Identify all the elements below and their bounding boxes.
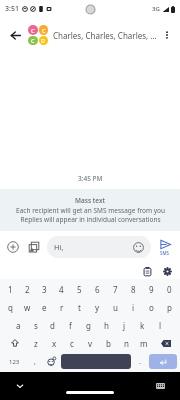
button[interactable]: 5 (70, 282, 88, 296)
staticText: d (50, 320, 55, 331)
button[interactable]: o (142, 300, 160, 314)
button[interactable]: Switch keyboard (152, 378, 168, 394)
button[interactable]: 3 (36, 282, 53, 296)
button[interactable]: a (10, 318, 27, 332)
button[interactable]: 6 (88, 282, 106, 296)
staticText: z (34, 338, 38, 349)
button[interactable]: 7 (106, 282, 124, 296)
button[interactable]: Add attachment (4, 238, 22, 256)
staticText: , (34, 357, 36, 367)
staticText: C (42, 27, 46, 34)
button[interactable]: r (53, 300, 70, 314)
staticText: 6 (95, 284, 100, 295)
staticText: 2 (25, 284, 30, 295)
button[interactable]: b (99, 336, 117, 350)
button[interactable]: Period (132, 354, 148, 369)
button[interactable]: g (79, 318, 97, 332)
button[interactable]: More options (157, 25, 177, 45)
button[interactable]: Back (4, 24, 26, 46)
staticText: y (95, 302, 100, 313)
button[interactable]: w (19, 300, 36, 314)
button[interactable]: 1 (2, 282, 19, 296)
staticText: w (24, 302, 31, 313)
button[interactable]: Send SMS (154, 238, 176, 257)
staticText: a (16, 320, 21, 331)
button[interactable]: 2 (19, 282, 36, 296)
button[interactable]: Enter (149, 354, 177, 369)
button[interactable]: 8 (124, 282, 142, 296)
button[interactable]: t (70, 300, 88, 314)
staticText: f (69, 320, 72, 331)
button[interactable]: Hi, (47, 236, 151, 258)
button[interactable]: c (63, 336, 81, 350)
staticText: . (139, 357, 141, 367)
staticText: q (8, 302, 13, 313)
button[interactable]: q (2, 300, 19, 314)
staticText: h (104, 320, 109, 331)
staticText: Each recipient will get an SMS message f… (16, 206, 165, 215)
staticText: o (149, 302, 154, 313)
button[interactable]: Gallery (25, 238, 43, 256)
button[interactable]: z (27, 336, 45, 350)
button[interactable]: 123 (2, 354, 27, 369)
button[interactable]: m (135, 336, 153, 350)
staticText: b (106, 338, 111, 349)
button[interactable]: p (160, 300, 178, 314)
staticText: v (88, 338, 93, 349)
staticText: u (113, 302, 118, 313)
staticText: g (86, 320, 91, 331)
button[interactable]: y (88, 300, 106, 314)
staticText: Replies will appear in individual conver… (20, 215, 161, 224)
button[interactable]: l (151, 318, 169, 332)
button[interactable]: h (97, 318, 115, 332)
staticText: e (42, 302, 47, 313)
button[interactable]: v (81, 336, 99, 350)
staticText: p (167, 302, 172, 313)
staticText: 123 (9, 358, 20, 366)
button[interactable]: 0 (160, 282, 178, 296)
button[interactable]: Backspace (153, 336, 178, 350)
button[interactable]: s (27, 318, 44, 332)
staticText: x (52, 338, 57, 349)
staticText: l (159, 320, 162, 331)
button[interactable]: 4 (53, 282, 70, 296)
staticText: Hi, (54, 242, 133, 252)
staticText: n (124, 338, 129, 349)
staticText: 9 (149, 284, 154, 295)
staticText: i (132, 302, 135, 313)
staticText: s (34, 320, 38, 331)
staticText: 5 (77, 284, 82, 295)
staticText: t (78, 302, 81, 313)
staticText: SMS (160, 250, 170, 256)
staticText: 8 (131, 284, 136, 295)
button[interactable]: Clipboard (140, 264, 154, 278)
button[interactable]: Shift (2, 336, 27, 350)
button[interactable]: k (133, 318, 151, 332)
staticText: 7 (113, 284, 118, 295)
button[interactable]: i (124, 300, 142, 314)
staticText: j (123, 320, 126, 331)
button[interactable]: Keyboard settings (160, 264, 174, 278)
staticText: 3 (42, 284, 47, 295)
button[interactable]: j (115, 318, 133, 332)
staticText: c (70, 338, 74, 349)
button[interactable]: 9 (142, 282, 160, 296)
button[interactable]: Comma (27, 354, 43, 369)
button[interactable]: n (117, 336, 135, 350)
button[interactable]: e (36, 300, 53, 314)
button[interactable]: x (45, 336, 63, 350)
staticText: D (41, 37, 46, 44)
button[interactable]: d (44, 318, 61, 332)
staticText: C (31, 27, 35, 34)
button[interactable]: f (61, 318, 79, 332)
staticText: 3G (152, 5, 160, 13)
button[interactable]: Emoji (43, 354, 60, 369)
staticText: 0 (167, 284, 172, 295)
staticText: 4 (59, 284, 64, 295)
staticText: r (60, 302, 64, 313)
staticText: C (31, 37, 35, 44)
staticText: m (140, 338, 148, 349)
button[interactable]: u (106, 300, 124, 314)
button[interactable]: Hide keyboard (12, 378, 28, 394)
button[interactable]: Space (61, 354, 131, 369)
